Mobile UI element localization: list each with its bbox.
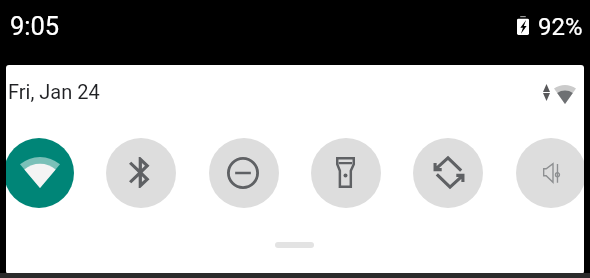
staticText: 9:05 (10, 11, 60, 41)
button[interactable]: Wi-Fi (6, 138, 74, 208)
staticText: 92% (538, 13, 583, 41)
button[interactable]: Flashlight (311, 138, 381, 208)
button[interactable]: Volume (516, 138, 584, 208)
button[interactable]: Do not disturb (209, 138, 279, 208)
staticText: Fri, Jan 24 (8, 80, 100, 103)
button[interactable]: Auto-rotate (413, 138, 483, 208)
button[interactable]: Bluetooth (106, 138, 176, 208)
